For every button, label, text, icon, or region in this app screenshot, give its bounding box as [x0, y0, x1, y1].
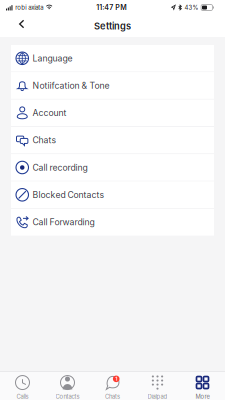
staticText: Contacts [55, 393, 79, 400]
button[interactable]: Calls [0, 375, 45, 400]
staticText: 43% [184, 4, 198, 11]
staticText: Dialpad [147, 393, 167, 400]
button[interactable]: Dialpad [135, 375, 180, 400]
button[interactable]: Call recording [11, 154, 214, 181]
button[interactable]: Notiifcation & Tone [11, 72, 214, 99]
button[interactable]: 1 [90, 375, 135, 400]
staticText: robi axiata [15, 4, 43, 11]
staticText: Chats [105, 393, 120, 400]
staticText: Account [32, 108, 66, 118]
button[interactable]: More [180, 375, 225, 400]
staticText: Language [32, 53, 72, 64]
staticText: More [195, 393, 209, 400]
staticText: 1 [115, 376, 117, 382]
staticText: Settings [94, 20, 131, 32]
button[interactable]: Chats [11, 127, 214, 153]
staticText: Call recording [32, 162, 87, 173]
button[interactable]: Language [11, 45, 214, 72]
button[interactable]: Contacts [45, 375, 90, 400]
staticText: Calls [16, 393, 28, 400]
staticText: 11:47 PM [96, 3, 127, 12]
staticText: Chats [32, 135, 56, 145]
button[interactable]: Back [0, 18, 34, 34]
staticText: Notiifcation & Tone [32, 80, 109, 91]
button[interactable]: Account [11, 100, 214, 126]
button[interactable]: Call Forwarding [11, 209, 214, 235]
staticText: Blocked Contacts [32, 190, 104, 200]
staticText: Call Forwarding [32, 217, 94, 227]
button[interactable]: Blocked Contacts [11, 181, 214, 208]
